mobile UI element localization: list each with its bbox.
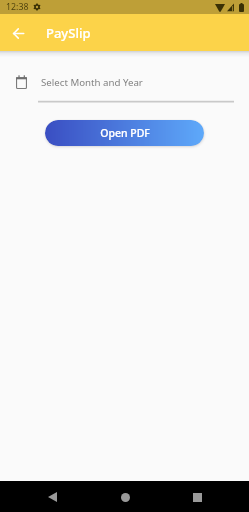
staticText: PaySlip bbox=[46, 24, 91, 42]
button[interactable]: Back bbox=[5, 20, 31, 46]
staticText: Open PDF bbox=[100, 126, 150, 140]
staticText: 12:38 bbox=[6, 1, 29, 13]
button[interactable]: Home bbox=[111, 483, 139, 511]
staticText: Select Month and Year bbox=[41, 76, 143, 89]
button[interactable]: Back bbox=[38, 483, 66, 511]
button[interactable]: Recents bbox=[183, 483, 211, 511]
button[interactable]: Select Month and Year bbox=[0, 75, 249, 103]
button[interactable]: Open PDF bbox=[45, 120, 204, 146]
